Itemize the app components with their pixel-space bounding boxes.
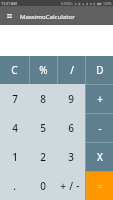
staticText: C [11,63,18,77]
button[interactable]: 8 [29,84,57,113]
button[interactable]: + [86,85,113,113]
button[interactable]: 2 [29,142,57,171]
button[interactable]: = [86,172,113,200]
staticText: - [98,121,102,135]
staticText: / [70,63,74,77]
staticText: +/- [60,179,83,193]
staticText: 1 [12,150,18,164]
staticText: D [96,63,104,77]
button[interactable]: 3 [57,142,85,171]
staticText: . [13,179,16,193]
button[interactable]: / [58,56,85,84]
staticText: 100% [103,1,112,6]
staticText: 9 [68,92,74,106]
button[interactable]: 1 [0,142,29,171]
staticText: = [97,179,103,193]
staticText: 4 [12,121,18,135]
button[interactable]: +/- [57,171,85,200]
staticText: 0 [40,179,46,193]
button[interactable]: - [86,114,113,142]
button[interactable]: 6 [57,113,85,142]
staticText: 3 [68,150,74,164]
button[interactable]: % [30,56,57,84]
button[interactable]: . [0,171,29,200]
staticText: 5 [40,121,46,135]
staticText: 11:27 AM [1,1,17,6]
staticText: X [97,150,103,164]
button[interactable]: D [86,56,113,84]
button[interactable]: X [86,143,113,171]
staticText: 8 [40,92,46,106]
staticText: MassimoCalculator [20,12,75,20]
button[interactable]: 0 [29,171,57,200]
staticText: 0.00K/s [61,1,73,6]
button[interactable]: Open navigation menu [0,6,18,25]
staticText: 6 [68,121,74,135]
staticText: % [39,63,48,77]
button[interactable]: 4 [0,113,29,142]
button[interactable]: C [0,56,29,84]
staticText: 7 [12,92,18,106]
button[interactable]: 7 [0,84,29,113]
button[interactable]: 9 [57,84,85,113]
button[interactable]: 5 [29,113,57,142]
staticText: + [97,92,103,106]
staticText: 2 [40,150,46,164]
